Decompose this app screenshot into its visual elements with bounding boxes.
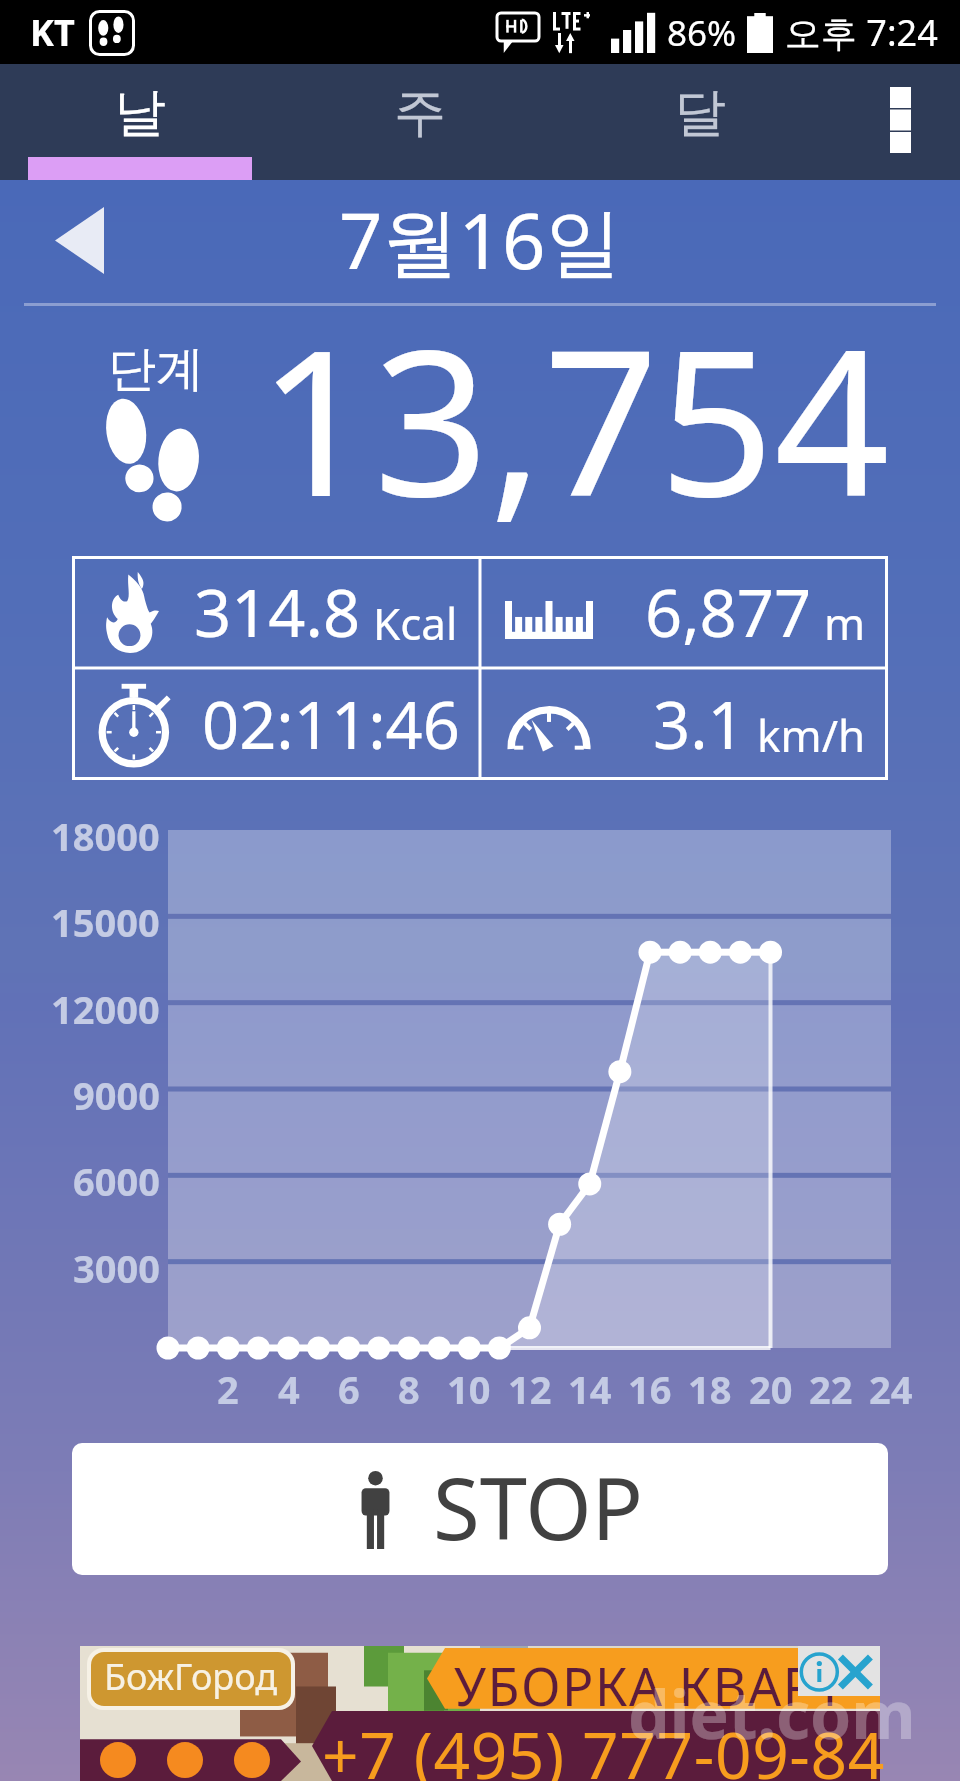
staticText: 20: [749, 1363, 793, 1411]
staticText: 날: [114, 80, 166, 146]
staticText: diet.com: [628, 1668, 916, 1758]
staticText: 8: [398, 1363, 420, 1411]
staticText: 주: [394, 80, 446, 146]
staticText: 18000: [51, 810, 160, 858]
button[interactable]: 314.8: [72, 556, 477, 668]
button[interactable]: 3.1: [477, 668, 888, 780]
staticText: 10: [447, 1363, 491, 1411]
staticText: 9000: [73, 1069, 160, 1117]
button[interactable]: 날: [0, 64, 280, 180]
staticText: 22: [809, 1363, 853, 1411]
staticText: 314.8: [194, 568, 361, 657]
button[interactable]: 달: [560, 64, 840, 180]
staticText: 14: [568, 1363, 612, 1411]
staticText: 3000: [73, 1242, 160, 1290]
button[interactable]: 주: [280, 64, 560, 180]
staticText: БожГород: [104, 1652, 278, 1701]
staticText: 6000: [73, 1155, 160, 1203]
button[interactable]: 6,877: [477, 556, 888, 668]
staticText: 24: [869, 1363, 913, 1411]
staticText: 6,877: [645, 568, 812, 657]
staticText: m: [824, 593, 866, 653]
staticText: 15000: [51, 896, 160, 944]
staticText: KT: [30, 8, 75, 57]
staticText: 86%: [667, 9, 737, 57]
staticText: 4: [278, 1363, 300, 1411]
staticText: УБОРКА КВАРТ: [454, 1650, 847, 1721]
staticText: 단계: [108, 339, 204, 399]
button[interactable]: More options: [840, 64, 960, 180]
button[interactable]: Advertisement: [80, 1646, 880, 1781]
staticText: 12000: [51, 983, 160, 1031]
staticText: 18: [688, 1363, 732, 1411]
button[interactable]: 02:11:46: [72, 668, 477, 780]
button[interactable]: Previous day: [40, 190, 120, 290]
staticText: 2: [217, 1363, 239, 1411]
staticText: 3.1: [653, 680, 745, 769]
staticText: km/h: [757, 705, 866, 765]
staticText: 6: [338, 1363, 360, 1411]
staticText: +7 (495) 777-09-84: [322, 1711, 885, 1781]
staticText: 7월16일: [339, 188, 622, 292]
staticText: 13,754: [258, 280, 890, 524]
staticText: 달: [674, 80, 726, 146]
staticText: 02:11:46: [202, 680, 460, 769]
staticText: Kcal: [373, 593, 458, 653]
staticText: 오후 7:24: [785, 8, 938, 57]
staticText: 16: [628, 1363, 672, 1411]
staticText: 12: [508, 1363, 552, 1411]
staticText: STOP: [433, 1449, 644, 1565]
button[interactable]: STOP: [72, 1443, 888, 1575]
